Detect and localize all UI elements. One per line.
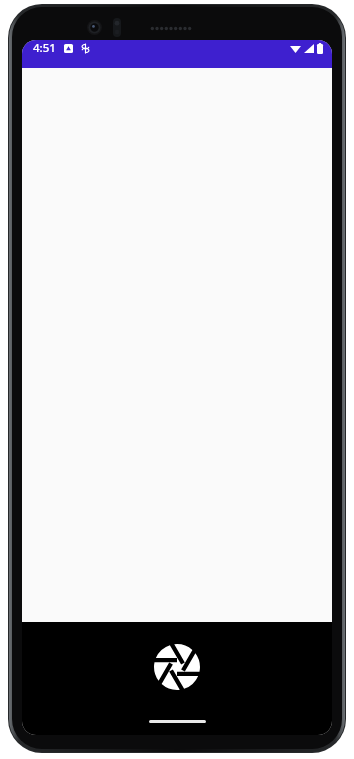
button[interactable]: Take photo bbox=[154, 644, 200, 690]
staticText: 4:51 bbox=[33, 40, 56, 56]
